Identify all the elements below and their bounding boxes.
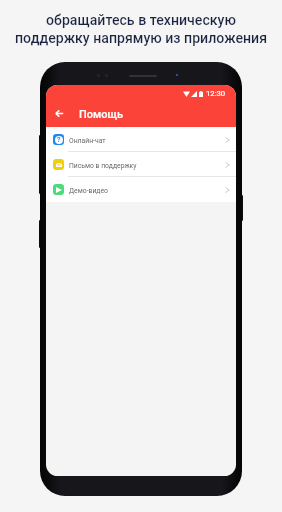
button[interactable]: Назад	[49, 103, 69, 123]
staticText: обращайтесь в техническую поддержку напр…	[15, 12, 267, 46]
staticText: 12:30	[206, 89, 226, 98]
button[interactable]: Письмо в поддержку	[46, 152, 236, 177]
staticText: Демо-видео	[69, 187, 108, 195]
staticText: Письмо в поддержку	[69, 162, 137, 170]
staticText: ?	[57, 136, 61, 144]
button[interactable]: Демо-видео	[46, 177, 236, 202]
button[interactable]: ?	[46, 127, 236, 152]
staticText: Онлайн-чат	[69, 137, 106, 145]
staticText: Помощь	[79, 108, 124, 121]
